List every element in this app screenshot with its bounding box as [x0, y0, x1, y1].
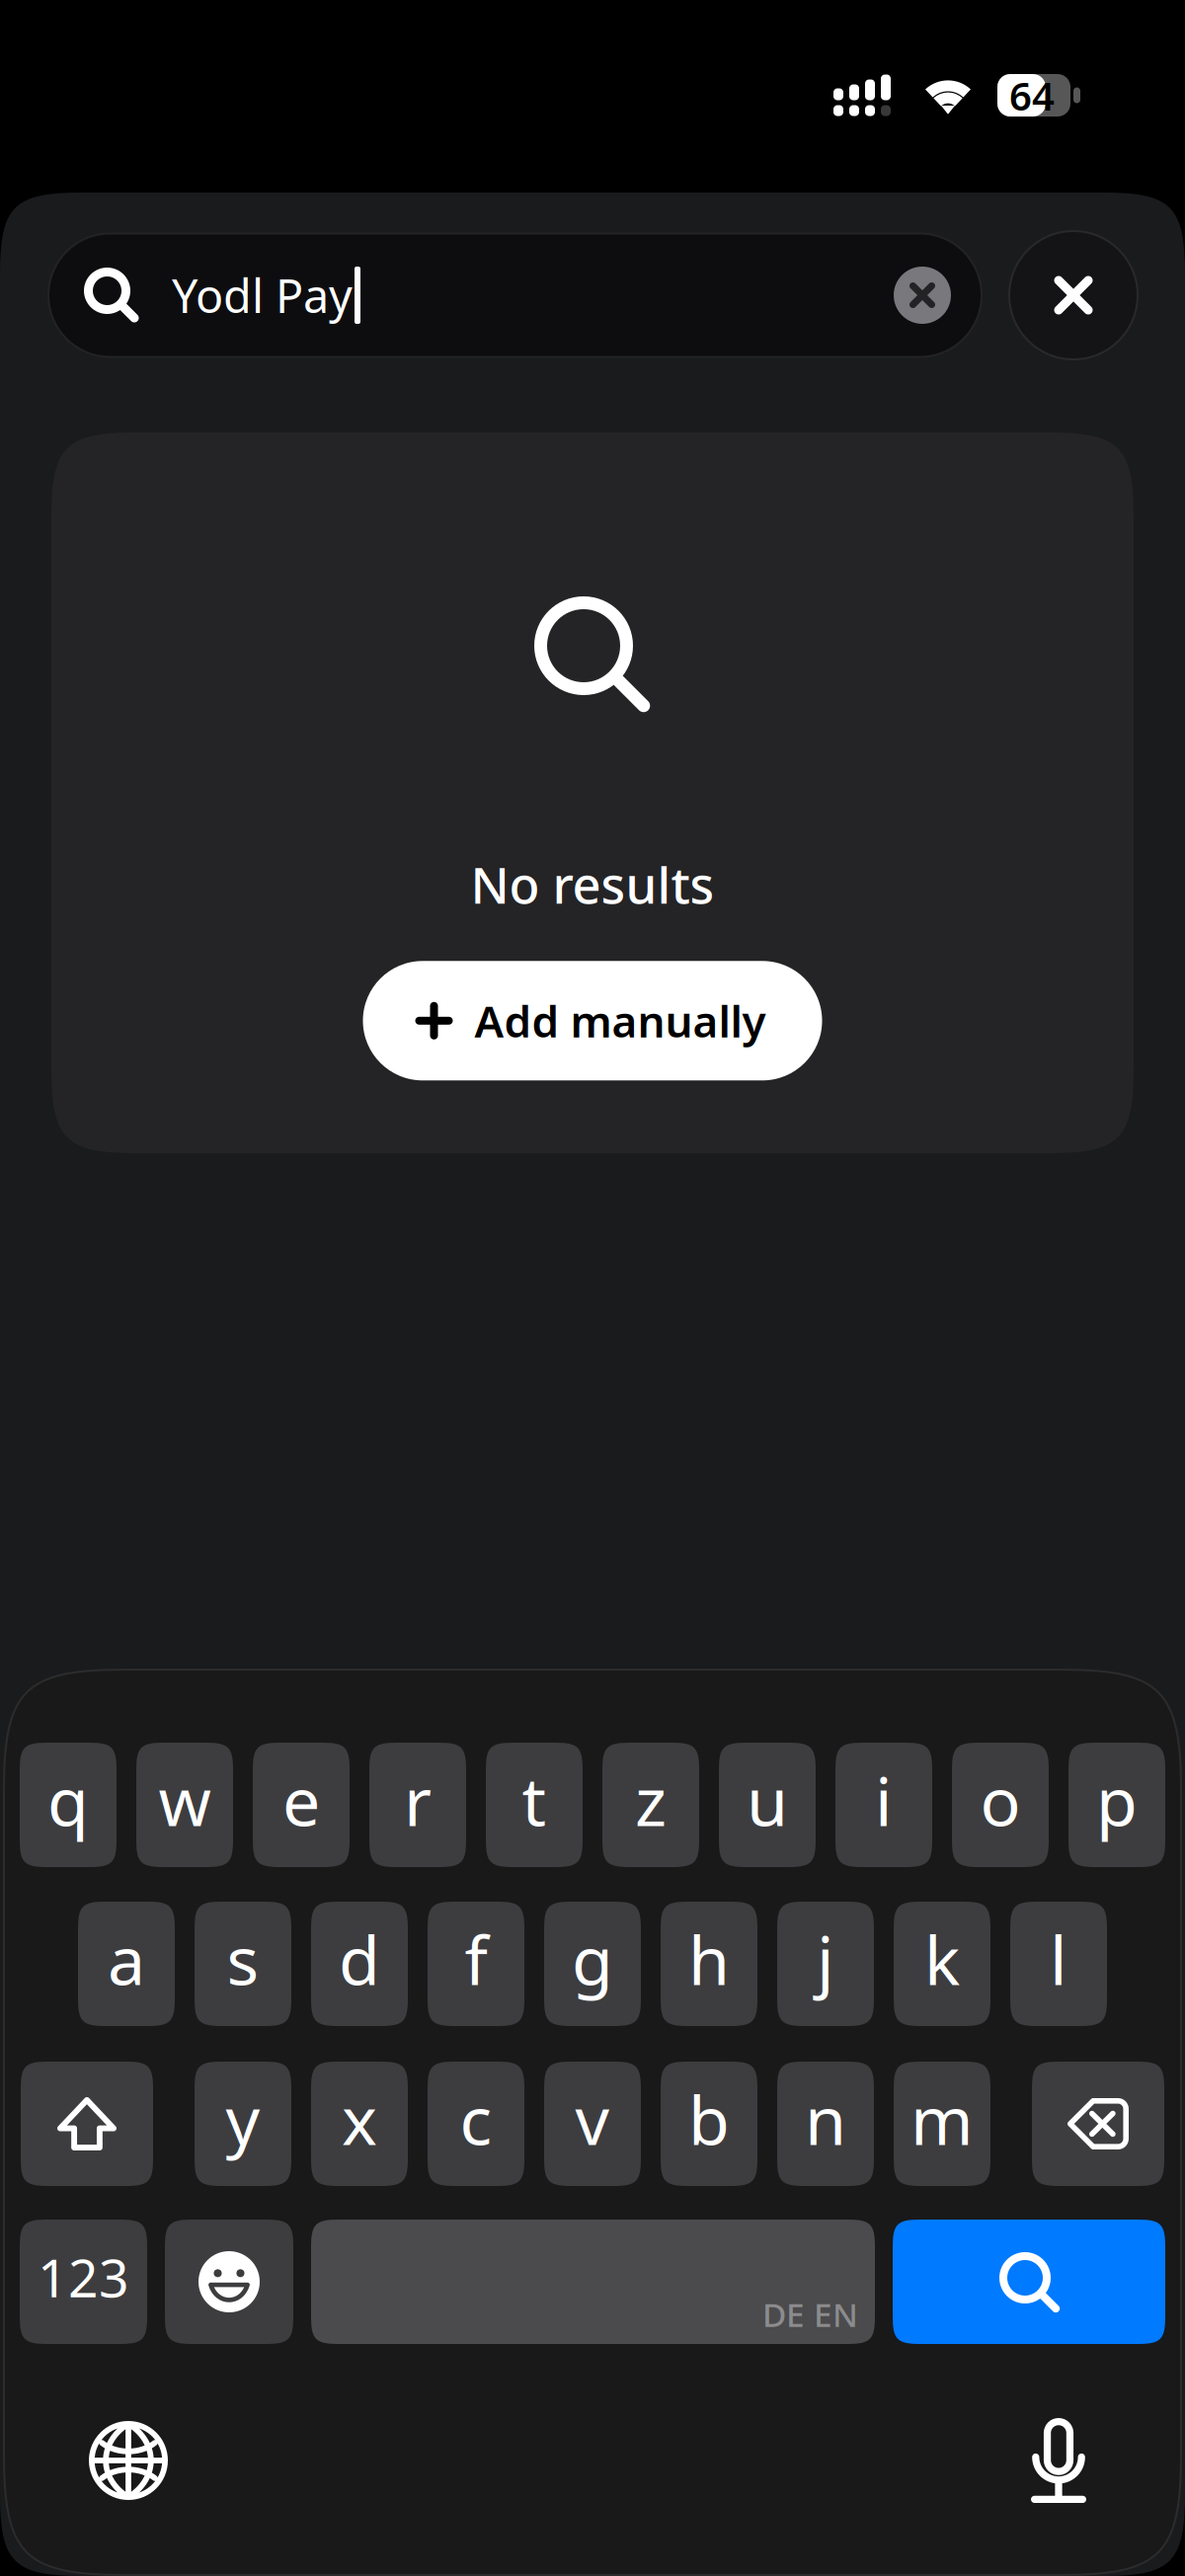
staticText: x	[342, 2074, 377, 2163]
button[interactable]: f	[428, 1902, 524, 2026]
staticText: f	[465, 1914, 487, 2003]
button[interactable]: n	[777, 2062, 874, 2186]
button[interactable]: Delete	[1032, 2062, 1164, 2186]
button[interactable]: t	[486, 1743, 583, 1867]
button[interactable]: g	[544, 1902, 641, 2026]
button[interactable]: x	[311, 2062, 408, 2186]
staticText: q	[47, 1755, 89, 1844]
button[interactable]: q	[20, 1743, 117, 1867]
staticText: i	[875, 1755, 893, 1844]
staticText: Yodl Pay	[172, 265, 353, 326]
button[interactable]: h	[661, 1902, 757, 2026]
staticText: h	[688, 1914, 730, 2003]
button[interactable]: Dictate	[1030, 2418, 1087, 2503]
button[interactable]: a	[78, 1902, 175, 2026]
button[interactable]: Space	[311, 2220, 875, 2344]
button[interactable]: Next keyboard	[89, 2421, 168, 2500]
staticText: a	[108, 1914, 145, 2003]
staticText: Add manually	[474, 992, 766, 1050]
button[interactable]: k	[894, 1902, 990, 2026]
button[interactable]: Shift	[21, 2062, 153, 2186]
button[interactable]: e	[253, 1743, 350, 1867]
staticText: d	[339, 1914, 380, 2003]
button[interactable]: Emoji	[165, 2220, 293, 2344]
button[interactable]: w	[136, 1743, 233, 1867]
button[interactable]: m	[894, 2062, 990, 2186]
button[interactable]: y	[195, 2062, 291, 2186]
staticText: g	[572, 1914, 613, 2003]
button[interactable]: Add manually	[363, 961, 822, 1080]
button[interactable]: c	[428, 2062, 524, 2186]
staticText: 123	[38, 2242, 129, 2312]
staticText: p	[1096, 1755, 1138, 1844]
staticText: j	[817, 1914, 834, 2003]
button[interactable]: l	[1010, 1902, 1107, 2026]
button[interactable]: Clear text	[894, 267, 951, 324]
button[interactable]: d	[311, 1902, 408, 2026]
staticText: b	[688, 2074, 730, 2163]
staticText: c	[460, 2074, 492, 2163]
staticText: r	[404, 1755, 432, 1844]
button[interactable]: o	[952, 1743, 1049, 1867]
button[interactable]: Close	[1008, 230, 1139, 360]
button[interactable]: 123	[20, 2220, 147, 2344]
staticText: z	[635, 1755, 667, 1844]
button[interactable]: u	[719, 1743, 816, 1867]
staticText: v	[575, 2074, 610, 2163]
staticText: l	[1050, 1914, 1067, 2003]
staticText: t	[522, 1755, 547, 1844]
button[interactable]: r	[369, 1743, 466, 1867]
button[interactable]: Search	[893, 2220, 1165, 2344]
button[interactable]: i	[835, 1743, 932, 1867]
button[interactable]: v	[544, 2062, 641, 2186]
button[interactable]: p	[1068, 1743, 1165, 1867]
staticText: o	[980, 1755, 1021, 1844]
button[interactable]: b	[661, 2062, 757, 2186]
staticText: k	[924, 1914, 960, 2003]
staticText: n	[805, 2074, 846, 2163]
staticText: No results	[471, 851, 714, 918]
staticText: 64	[1009, 69, 1055, 121]
staticText: u	[747, 1755, 788, 1844]
staticText: m	[910, 2074, 974, 2163]
staticText: w	[158, 1755, 211, 1844]
staticText: DE EN	[762, 2292, 858, 2336]
button[interactable]: j	[777, 1902, 874, 2026]
staticText: y	[226, 2074, 260, 2163]
button[interactable]: z	[602, 1743, 699, 1867]
staticText: s	[227, 1914, 259, 2003]
button[interactable]: s	[195, 1902, 291, 2026]
staticText: e	[282, 1755, 320, 1844]
